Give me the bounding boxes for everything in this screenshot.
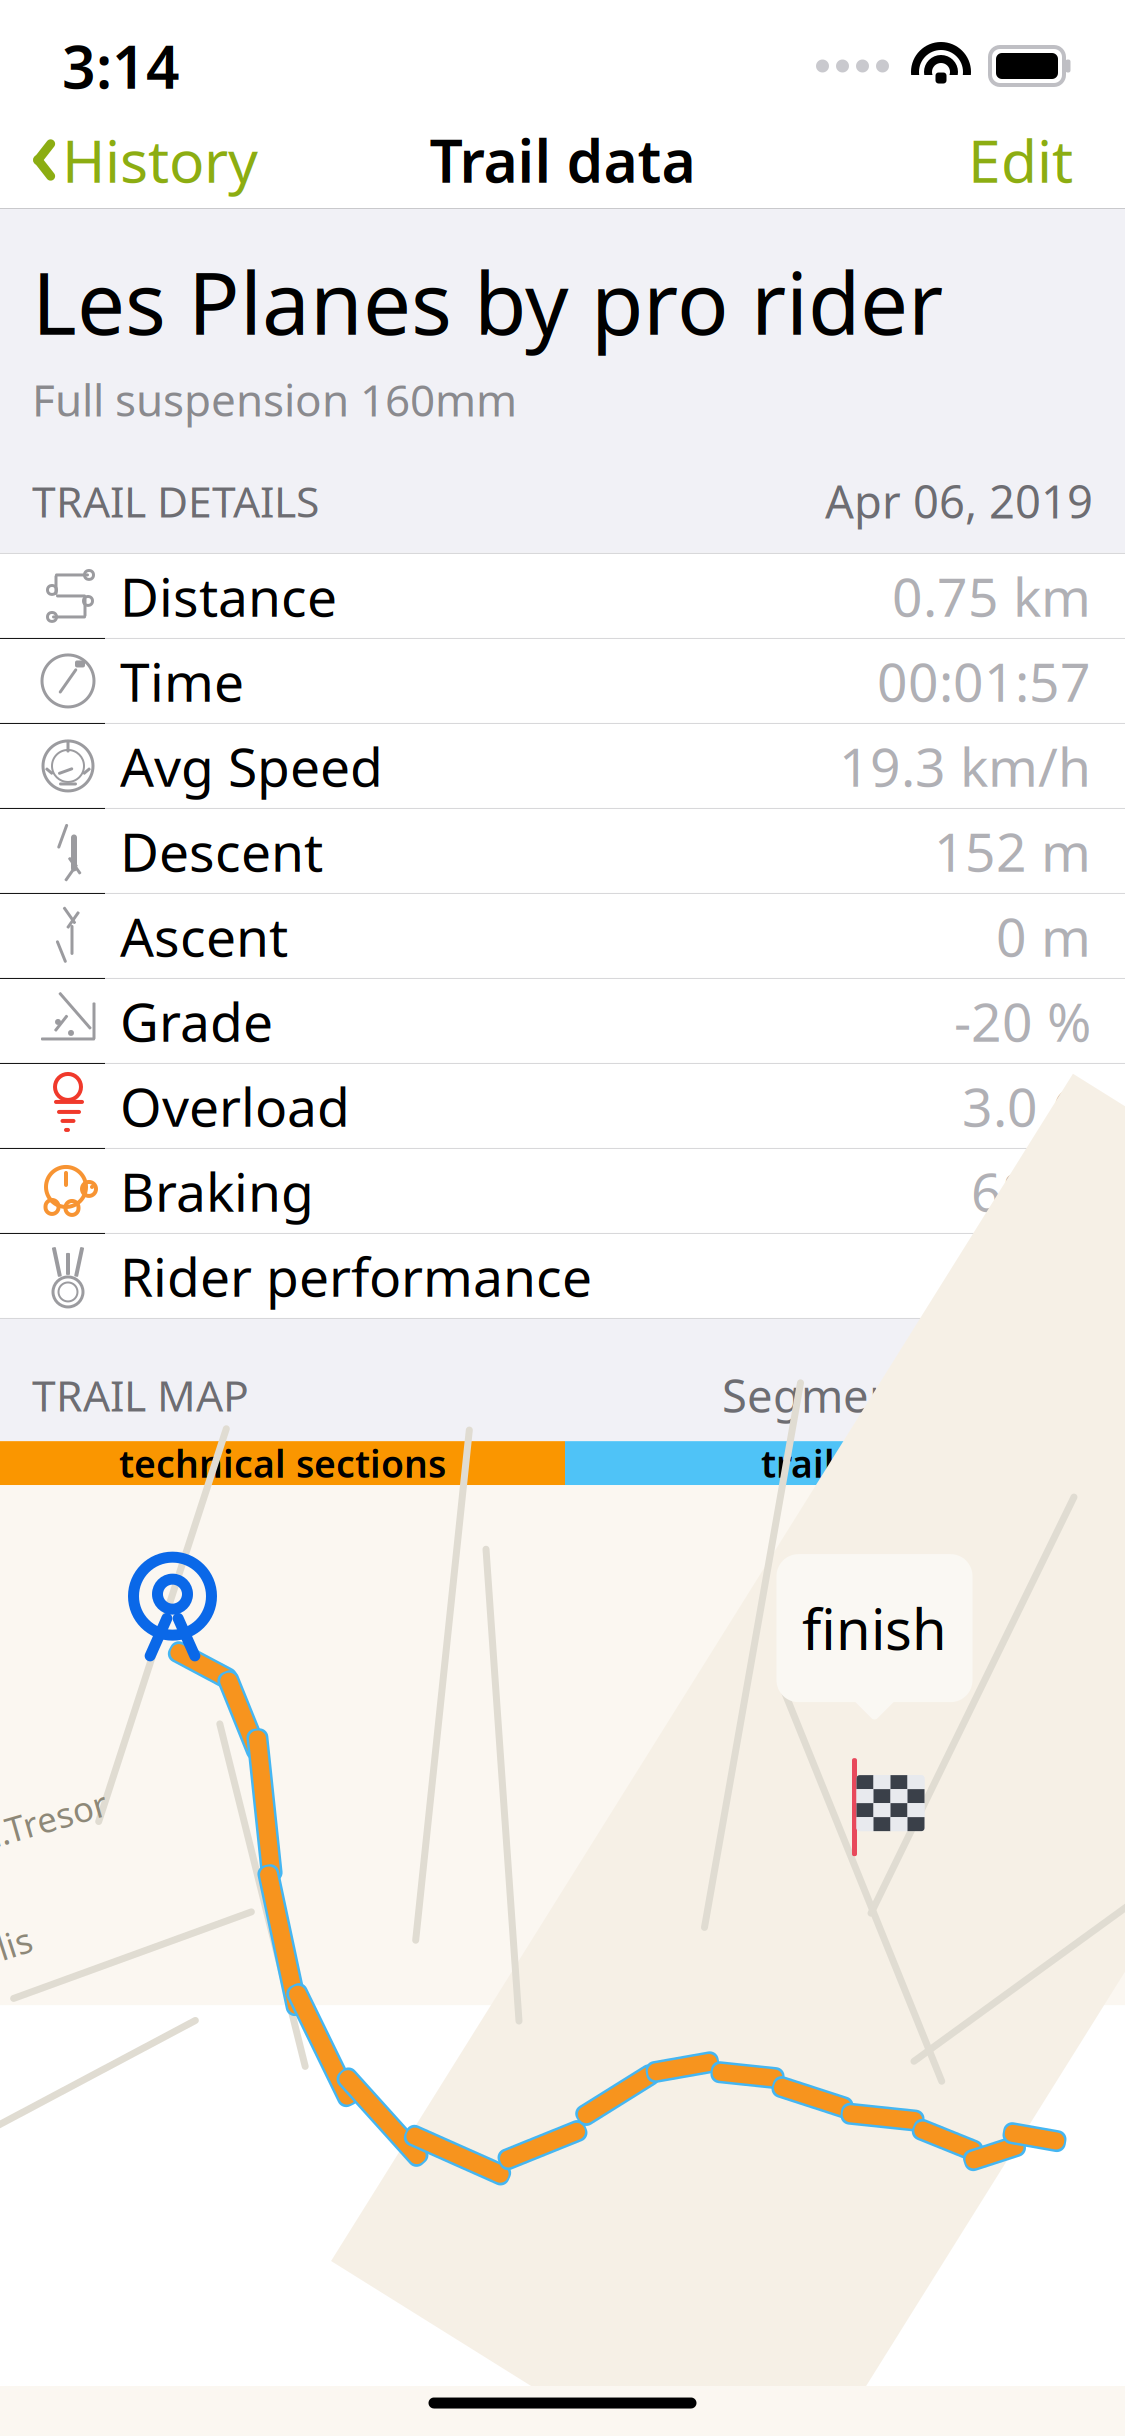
staticText: n.Tresor: [0, 1797, 108, 1843]
staticText: lis: [0, 1920, 32, 1966]
staticText: Edit: [968, 121, 1073, 199]
staticText: Full suspension 160mm: [32, 370, 517, 429]
staticText: 0.75 km: [892, 560, 1091, 631]
staticText: trail path: [761, 1438, 929, 1488]
staticText: Braking: [120, 1155, 314, 1226]
button[interactable]: Ascent: [0, 894, 1125, 979]
staticText: Overload: [120, 1070, 350, 1141]
button[interactable]: Overload: [0, 1064, 1125, 1149]
button[interactable]: Edit: [944, 116, 1097, 204]
staticText: Apr 06, 2019: [825, 471, 1093, 531]
button[interactable]: Time: [0, 639, 1125, 724]
staticText: Les Planes by pro rider: [32, 245, 943, 358]
staticText: 3.0 G: [962, 1070, 1091, 1141]
staticText: Avg Speed: [120, 730, 383, 801]
staticText: Grade: [120, 985, 273, 1056]
staticText: TRAIL DETAILS: [32, 472, 319, 529]
button[interactable]: Grade: [0, 979, 1125, 1064]
staticText: Rider performance: [120, 1240, 592, 1311]
staticText: 00:01:57: [877, 645, 1091, 716]
button[interactable]: Distance: [0, 554, 1125, 639]
button[interactable]: Descent: [0, 809, 1125, 894]
staticText: technical sections: [119, 1438, 446, 1488]
staticText: -20 %: [954, 985, 1091, 1056]
staticText: Segment 0.75 km: [722, 1365, 1093, 1425]
staticText: Distance: [120, 560, 337, 631]
staticText: Time: [120, 645, 244, 716]
staticText: 3:14: [62, 27, 180, 105]
button[interactable]: Rider performance: [0, 1234, 1125, 1319]
staticText: 0 m: [996, 900, 1091, 971]
staticText: 68 %: [971, 1155, 1091, 1226]
staticText: History: [62, 121, 258, 199]
button[interactable]: Braking: [0, 1149, 1125, 1234]
staticText: Trail data: [429, 121, 695, 199]
button[interactable]: Avg Speed: [0, 724, 1125, 809]
button[interactable]: History: [0, 116, 272, 204]
staticText: 152 m: [934, 815, 1091, 886]
staticText: Descent: [120, 815, 323, 886]
staticText: finish: [802, 1591, 947, 1665]
staticText: 19.3 km/h: [839, 730, 1091, 801]
staticText: TRAIL MAP: [32, 1367, 249, 1423]
staticText: Ascent: [120, 900, 288, 971]
